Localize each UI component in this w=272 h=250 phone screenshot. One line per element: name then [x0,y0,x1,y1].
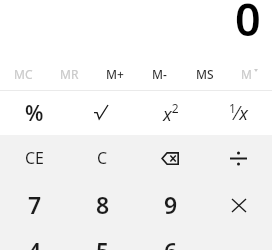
button[interactable]: Percent [0,91,68,135]
button[interactable]: MC [0,57,46,91]
staticText: x2 [163,100,179,126]
button[interactable]: C [68,135,136,181]
staticText: MR [60,66,79,82]
staticText: 0 [235,0,261,49]
staticText: MC [14,66,33,82]
button[interactable]: Squared [136,91,204,135]
button[interactable]: 5 [68,227,136,250]
staticText: 4 [28,235,42,250]
button[interactable]: 9 [136,181,204,227]
button[interactable]: Square root [68,91,136,135]
staticText: M+ [106,66,124,82]
staticText: 5 [96,235,110,250]
button[interactable]: M+ [92,57,137,91]
button[interactable]: 8 [68,181,136,227]
staticText: 9 [164,189,178,220]
staticText: M- [152,66,167,82]
staticText: MS [196,66,214,82]
staticText: M [241,66,252,82]
button[interactable]: Memory options [227,57,272,91]
button[interactable]: 6 [136,227,204,250]
staticText: CE [25,147,45,169]
button[interactable]: CE [0,135,68,181]
button[interactable]: Backspace [136,135,204,181]
button[interactable]: Reciprocal [204,91,272,135]
button[interactable]: Multiply [204,181,272,227]
button[interactable]: M- [137,57,182,91]
staticText: 7 [28,189,42,220]
staticText: 8 [96,189,110,220]
button[interactable]: 4 [0,227,68,250]
staticText: C [97,147,108,169]
button[interactable]: MR [46,57,92,91]
button[interactable]: MS [182,57,227,91]
staticText: 1⁄x [229,100,248,126]
staticText: 6 [164,235,178,250]
staticText: % [25,99,44,128]
button[interactable]: Divide [204,135,272,181]
button[interactable]: 7 [0,181,68,227]
